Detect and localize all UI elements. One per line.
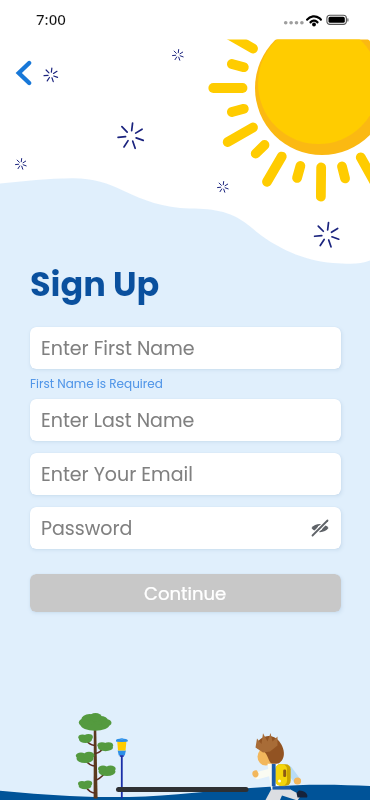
staticText: 7:00 <box>36 9 66 29</box>
button[interactable]: Show password <box>310 518 330 538</box>
button[interactable]: Enter Your Email <box>30 453 341 495</box>
button[interactable]: Enter Last Name <box>30 399 341 441</box>
button[interactable]: Password <box>30 507 341 549</box>
staticText: Enter Your Email <box>41 461 193 488</box>
staticText: Continue <box>144 581 227 606</box>
staticText: Sign Up <box>30 261 160 308</box>
staticText: Password <box>41 515 133 542</box>
button[interactable]: Continue <box>30 574 341 612</box>
staticText: Enter Last Name <box>41 407 195 434</box>
button[interactable]: Enter First Name <box>30 327 341 369</box>
staticText: First Name is Required <box>30 375 163 392</box>
button[interactable]: Back <box>8 57 40 89</box>
staticText: Enter First Name <box>41 335 195 362</box>
